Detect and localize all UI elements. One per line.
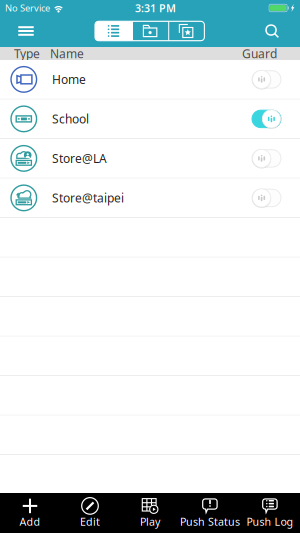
button[interactable]: Add [0, 493, 60, 533]
staticText: Store@taipei [52, 190, 124, 206]
button[interactable]: Favorites [168, 21, 204, 41]
button[interactable]: Store@LA [0, 139, 300, 178]
button[interactable]: Guard disabled [252, 148, 281, 169]
button[interactable]: Home [0, 60, 300, 99]
staticText: Play [140, 514, 160, 529]
staticText: Type [14, 45, 40, 61]
staticText: Store@LA [52, 150, 107, 166]
staticText: School [52, 111, 89, 127]
staticText: 3:31 PM [135, 1, 176, 15]
button[interactable]: Guard disabled [252, 69, 281, 90]
staticText: Guard [242, 45, 277, 61]
button[interactable]: School [0, 99, 300, 138]
button[interactable]: Push Status [180, 493, 240, 533]
staticText: Name [50, 45, 84, 61]
button[interactable]: Play [120, 493, 180, 533]
staticText: No Service [5, 2, 50, 14]
button[interactable]: Folders [132, 21, 168, 41]
staticText: Edit [80, 514, 100, 529]
staticText: Home [52, 71, 86, 87]
button[interactable]: Store@taipei [0, 178, 300, 217]
staticText: Add [19, 514, 40, 529]
button[interactable]: Push Log [240, 493, 300, 533]
button[interactable]: Guard enabled [252, 109, 281, 129]
button[interactable]: Search [251, 15, 293, 46]
button[interactable]: Edit [60, 493, 120, 533]
staticText: Push Log [246, 514, 293, 529]
button[interactable]: Menu [4, 15, 48, 46]
button[interactable]: Guard disabled [252, 188, 281, 208]
button[interactable]: List view [95, 21, 132, 41]
staticText: Push Status [180, 514, 240, 529]
